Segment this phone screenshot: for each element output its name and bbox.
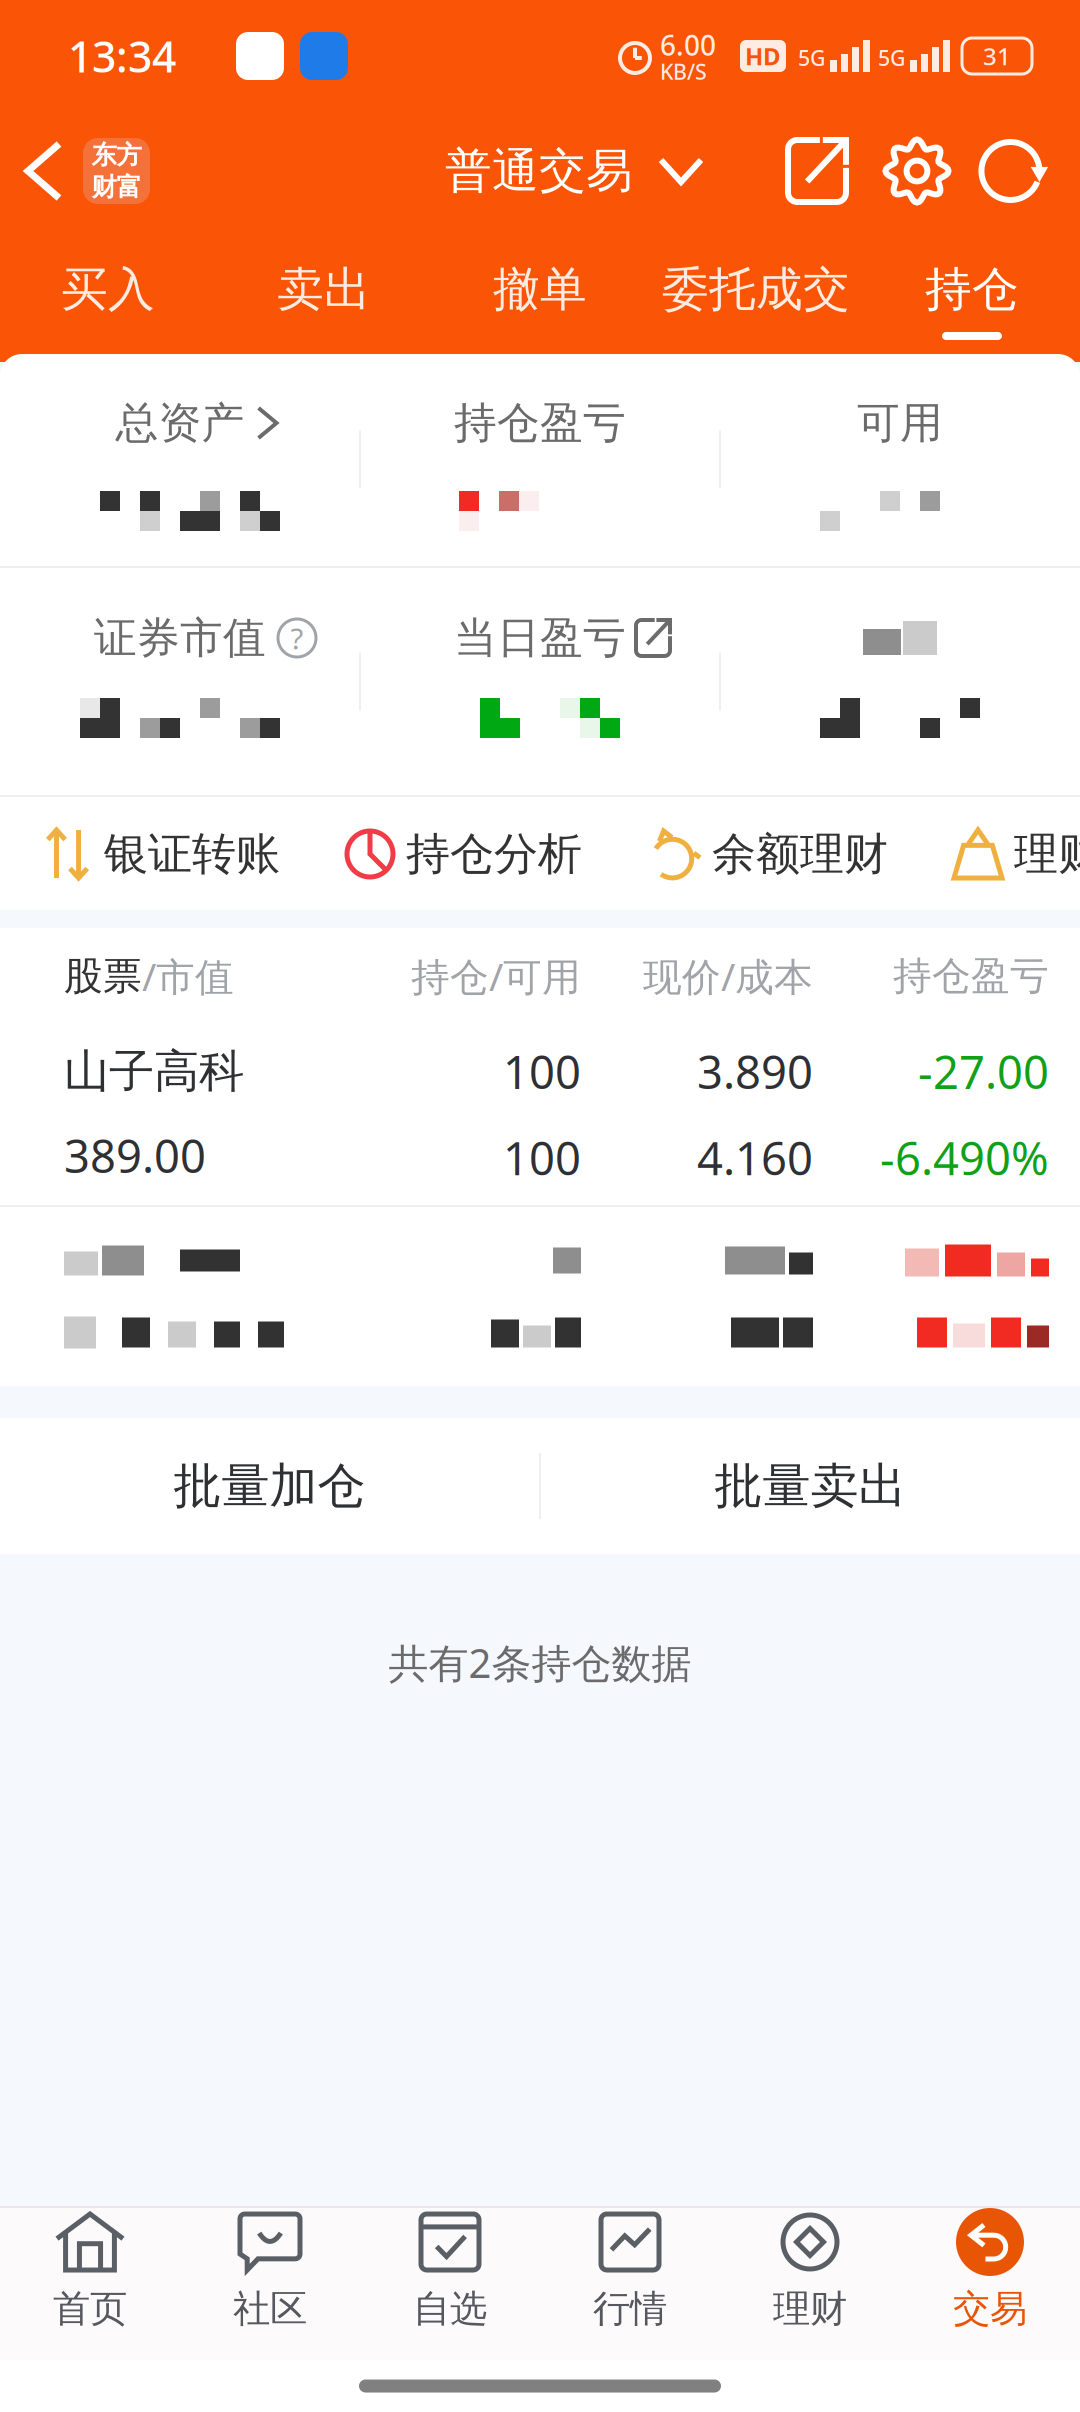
staticText: 现价/成本 [643, 950, 813, 1002]
staticText: 自选 [413, 2286, 487, 2332]
staticText: 持仓盈亏 [893, 952, 1049, 1000]
staticText: -6.490% [880, 1127, 1049, 1188]
button[interactable]: 总资产 [0, 353, 360, 566]
staticText: 389.00 [64, 1125, 206, 1185]
button[interactable]: 理财 [954, 827, 1080, 881]
button[interactable] [720, 568, 1080, 795]
staticText: 首页 [53, 2286, 127, 2332]
button[interactable]: Settings [867, 131, 967, 211]
button[interactable]: 交易 [900, 2208, 1080, 2360]
staticText: 委托成交 [662, 261, 850, 318]
button[interactable]: 普通交易 [379, 142, 701, 200]
staticText: 余额理财 [712, 827, 888, 881]
button[interactable]: 撤单 [432, 230, 648, 354]
button[interactable]: 行情 [540, 2208, 720, 2360]
staticText: HD [745, 40, 781, 72]
staticText: 财富 [91, 171, 141, 203]
button[interactable]: 持仓分析 [346, 827, 582, 881]
button[interactable]: 证券市值 [0, 568, 360, 795]
staticText: -27.00 [918, 1041, 1049, 1101]
staticText: 理财 [773, 2286, 847, 2332]
button[interactable]: 卖出 [216, 230, 432, 354]
button[interactable]: 当日盈亏 [360, 568, 720, 795]
staticText: 6.00 [660, 26, 716, 63]
button[interactable]: Refresh [967, 131, 1062, 211]
staticText: 批量卖出 [714, 1456, 906, 1515]
button[interactable]: 自选 [360, 2208, 540, 2360]
button[interactable]: 银证转账 [44, 827, 280, 881]
staticText: 13:34 [68, 28, 176, 84]
staticText: 可用 [857, 397, 943, 449]
staticText: 5G [878, 44, 906, 72]
staticText: 当日盈亏 [454, 612, 626, 664]
staticText: ? [290, 618, 303, 657]
staticText: 3.890 [697, 1041, 813, 1101]
button[interactable]: 余额理财 [648, 827, 888, 881]
staticText: /市值 [142, 950, 234, 1002]
staticText: 交易 [953, 2286, 1027, 2332]
staticText: 社区 [233, 2286, 307, 2332]
staticText: 持仓/可用 [411, 950, 581, 1002]
button[interactable]: 山子高科 [0, 1024, 1080, 1205]
staticText: 东方 [91, 139, 141, 170]
staticText: 总资产 [115, 397, 244, 449]
button[interactable]: 社区 [180, 2208, 360, 2360]
button[interactable]: 持仓盈亏 [360, 353, 720, 566]
staticText: 行情 [593, 2286, 667, 2332]
staticText: 股票 [64, 952, 142, 1000]
staticText: 5G [798, 44, 826, 72]
staticText: 证券市值 [94, 612, 266, 664]
staticText: 山子高科 [64, 1044, 244, 1099]
staticText: 31 [983, 40, 1011, 72]
button[interactable]: 批量加仓 [0, 1418, 539, 1554]
staticText: 理财 [1014, 827, 1080, 881]
button[interactable]: 首页 [0, 2208, 180, 2360]
staticText: 100 [503, 1041, 581, 1101]
button[interactable]: 理财 [720, 2208, 900, 2360]
staticText: 100 [503, 1127, 581, 1188]
button[interactable]: Back [0, 138, 150, 204]
button[interactable]: 批量卖出 [541, 1418, 1080, 1554]
staticText: 共有2条持仓数据 [388, 1636, 691, 1689]
staticText: 持仓盈亏 [454, 397, 626, 449]
staticText: 持仓分析 [406, 827, 582, 881]
button[interactable]: 买入 [0, 230, 216, 354]
button[interactable]: Share [767, 131, 867, 211]
staticText: 持仓 [925, 261, 1019, 318]
staticText: 撤单 [493, 261, 587, 318]
staticText: 4.160 [697, 1127, 813, 1188]
staticText: 银证转账 [104, 827, 280, 881]
button[interactable]: 委托成交 [648, 230, 864, 354]
button[interactable]: 可用 [720, 353, 1080, 566]
staticText: 卖出 [277, 261, 371, 318]
staticText: 普通交易 [445, 142, 633, 200]
staticText: 买入 [61, 261, 155, 318]
staticText: KB/S [660, 57, 707, 86]
button[interactable] [0, 1207, 1080, 1386]
button[interactable]: 持仓 [864, 230, 1080, 354]
staticText: 批量加仓 [173, 1456, 365, 1515]
